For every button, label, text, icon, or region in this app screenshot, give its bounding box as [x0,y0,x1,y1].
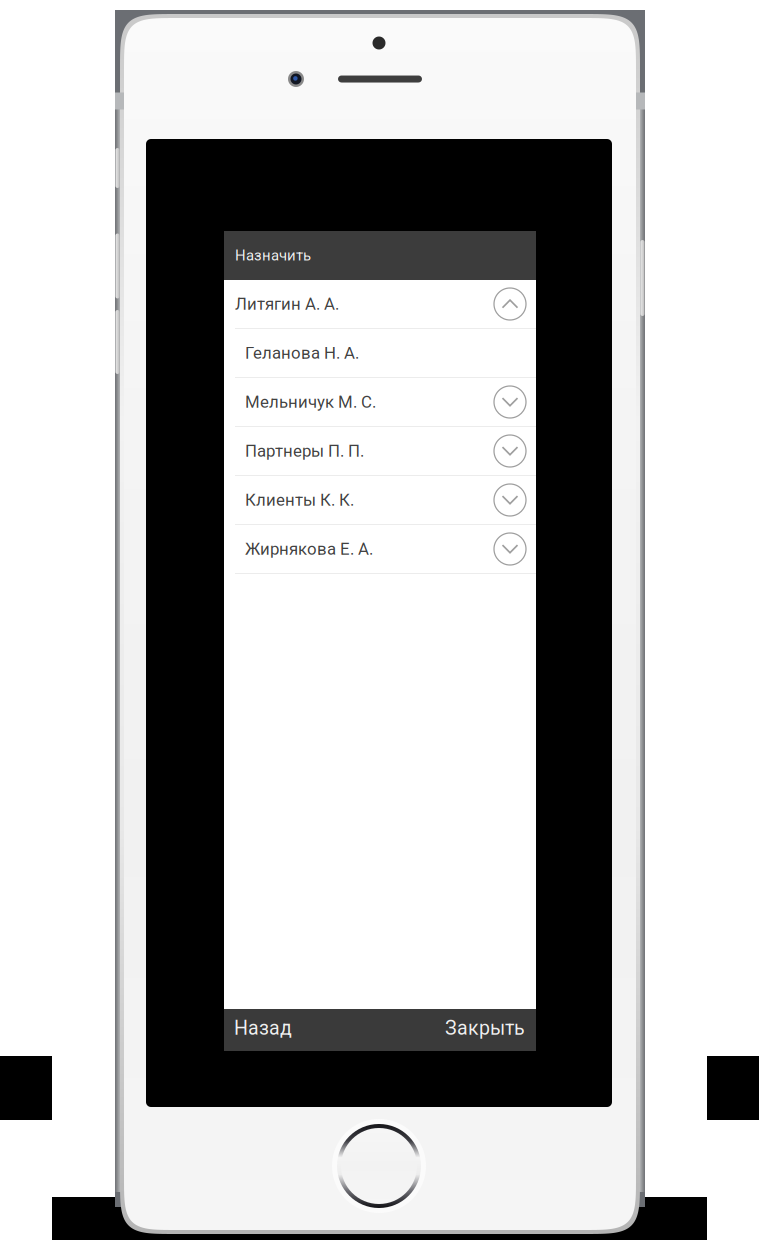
button[interactable]: Expand [494,386,526,418]
staticText: Мельничук М. С. [245,392,376,412]
button[interactable]: Закрыть [445,1009,536,1050]
button[interactable]: Клиенты К. К. [224,476,536,524]
staticText: Назад [234,1016,292,1039]
button[interactable]: Мельничук М. С. [224,378,536,426]
staticText: Жирнякова Е. А. [245,539,373,559]
button[interactable]: Партнеры П. П. [224,427,536,475]
staticText: Закрыть [445,1016,525,1039]
staticText: Партнеры П. П. [245,441,364,461]
button[interactable]: Литягин А. А. [224,280,536,328]
button[interactable]: Expand [494,484,526,516]
button[interactable]: Expand [494,435,526,467]
staticText: Литягин А. А. [235,294,339,314]
button[interactable]: Collapse [494,288,526,320]
staticText: Назначить [235,247,311,264]
staticText: Геланова Н. А. [245,343,359,363]
staticText: Клиенты К. К. [245,490,354,510]
button[interactable]: Назад [224,1009,292,1050]
button[interactable]: Геланова Н. А. [224,329,536,377]
button[interactable]: Expand [494,533,526,565]
button[interactable]: Жирнякова Е. А. [224,525,536,573]
